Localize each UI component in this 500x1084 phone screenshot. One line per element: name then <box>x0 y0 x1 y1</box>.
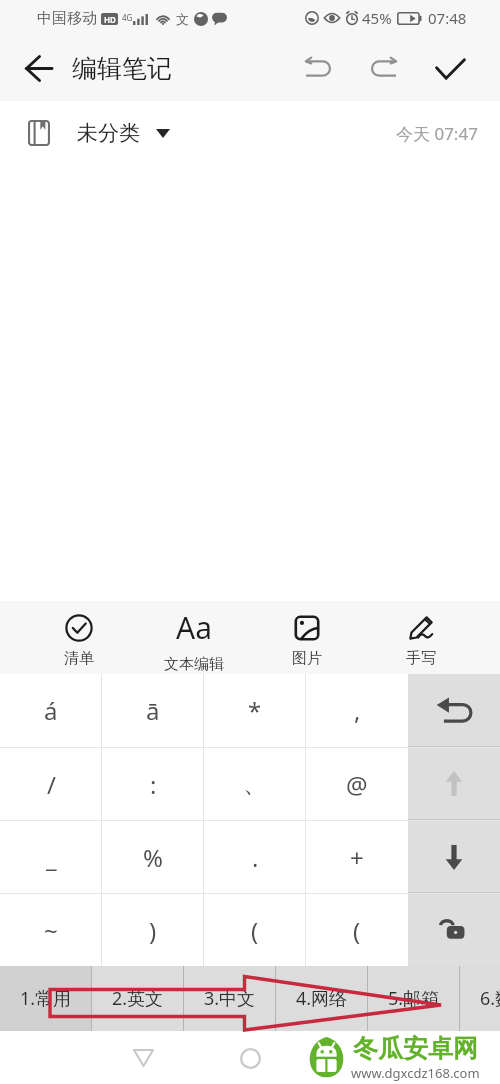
button[interactable]: á <box>0 674 102 747</box>
staticText: 清单 <box>64 649 94 668</box>
button[interactable]: 5.邮箱 <box>368 966 460 1031</box>
staticText: 6.数 <box>480 986 500 1011</box>
button[interactable]: % <box>102 821 204 893</box>
button[interactable]: 、 <box>204 748 306 820</box>
button[interactable]: Back <box>119 1034 167 1082</box>
button[interactable]: 未分类 <box>28 120 170 146</box>
staticText: 编辑笔记 <box>72 53 172 84</box>
button[interactable]: 4.网络 <box>276 966 368 1031</box>
button[interactable]: + <box>306 821 408 893</box>
staticText: á <box>44 694 58 727</box>
button[interactable]: / <box>0 748 102 820</box>
staticText: 冬瓜安卓网 <box>353 1033 478 1064</box>
button[interactable]: ā <box>102 674 204 747</box>
staticText: HD <box>104 14 116 25</box>
staticText: 4G <box>122 12 133 23</box>
button[interactable]: Page down <box>408 821 500 893</box>
button[interactable]: Home <box>226 1034 274 1082</box>
staticText: 2.英文 <box>112 986 164 1011</box>
button[interactable]: . <box>204 821 306 893</box>
staticText: % <box>143 841 163 874</box>
button[interactable]: , <box>306 674 408 747</box>
staticText: 图片 <box>292 649 322 668</box>
button[interactable]: 1.常用 <box>0 966 92 1031</box>
staticText: _ <box>46 841 57 874</box>
staticText: . <box>252 841 259 874</box>
staticText: Aa <box>176 607 212 648</box>
button[interactable]: Unlock <box>408 894 500 966</box>
staticText: / <box>47 768 56 801</box>
staticText: ā <box>146 694 160 727</box>
button[interactable]: 图片 <box>252 601 362 674</box>
staticText: 1.常用 <box>20 986 72 1011</box>
staticText: 未分类 <box>77 120 140 146</box>
staticText: 45% <box>362 8 392 28</box>
staticText: 4.网络 <box>296 986 348 1011</box>
staticText: 、 <box>243 769 267 799</box>
button[interactable]: 2.英文 <box>92 966 184 1031</box>
button[interactable]: @ <box>306 748 408 820</box>
button[interactable]: 6.数 <box>460 966 500 1031</box>
staticText: 文本编辑 <box>164 655 224 674</box>
button[interactable]: Save <box>417 36 483 101</box>
button[interactable]: 手写 <box>366 601 476 674</box>
button[interactable]: Backspace <box>408 674 500 747</box>
button[interactable]: Undo <box>285 36 351 101</box>
button[interactable]: _ <box>0 821 102 893</box>
staticText: 今天 07:47 <box>396 122 478 145</box>
button[interactable]: ~ <box>0 894 102 966</box>
button[interactable]: ( <box>306 894 408 966</box>
staticText: www.dgxcdz168.com <box>351 1064 480 1082</box>
button[interactable]: Back <box>0 36 72 101</box>
staticText: 3.中文 <box>204 986 256 1011</box>
staticText: 文 <box>176 11 189 27</box>
button[interactable]: Page up <box>408 748 500 820</box>
staticText: ( <box>251 914 259 947</box>
staticText: 5.邮箱 <box>388 986 440 1011</box>
button[interactable]: 清单 <box>24 601 134 674</box>
staticText: , <box>354 694 361 727</box>
staticText: 手写 <box>406 649 436 668</box>
staticText: + <box>350 841 364 874</box>
button[interactable]: * <box>204 674 306 747</box>
staticText: ( <box>353 914 361 947</box>
button[interactable]: Redo <box>351 36 417 101</box>
button[interactable]: Aa <box>139 601 249 674</box>
button[interactable]: : <box>102 748 204 820</box>
button[interactable]: 3.中文 <box>184 966 276 1031</box>
button[interactable]: ) <box>102 894 204 966</box>
staticText: ) <box>149 914 157 947</box>
staticText: : <box>150 768 157 801</box>
button[interactable]: ( <box>204 894 306 966</box>
staticText: 07:48 <box>428 8 467 28</box>
staticText: 中国移动 <box>37 9 97 28</box>
staticText: ~ <box>44 914 58 947</box>
staticText: @ <box>346 768 368 801</box>
staticText: * <box>248 694 262 727</box>
